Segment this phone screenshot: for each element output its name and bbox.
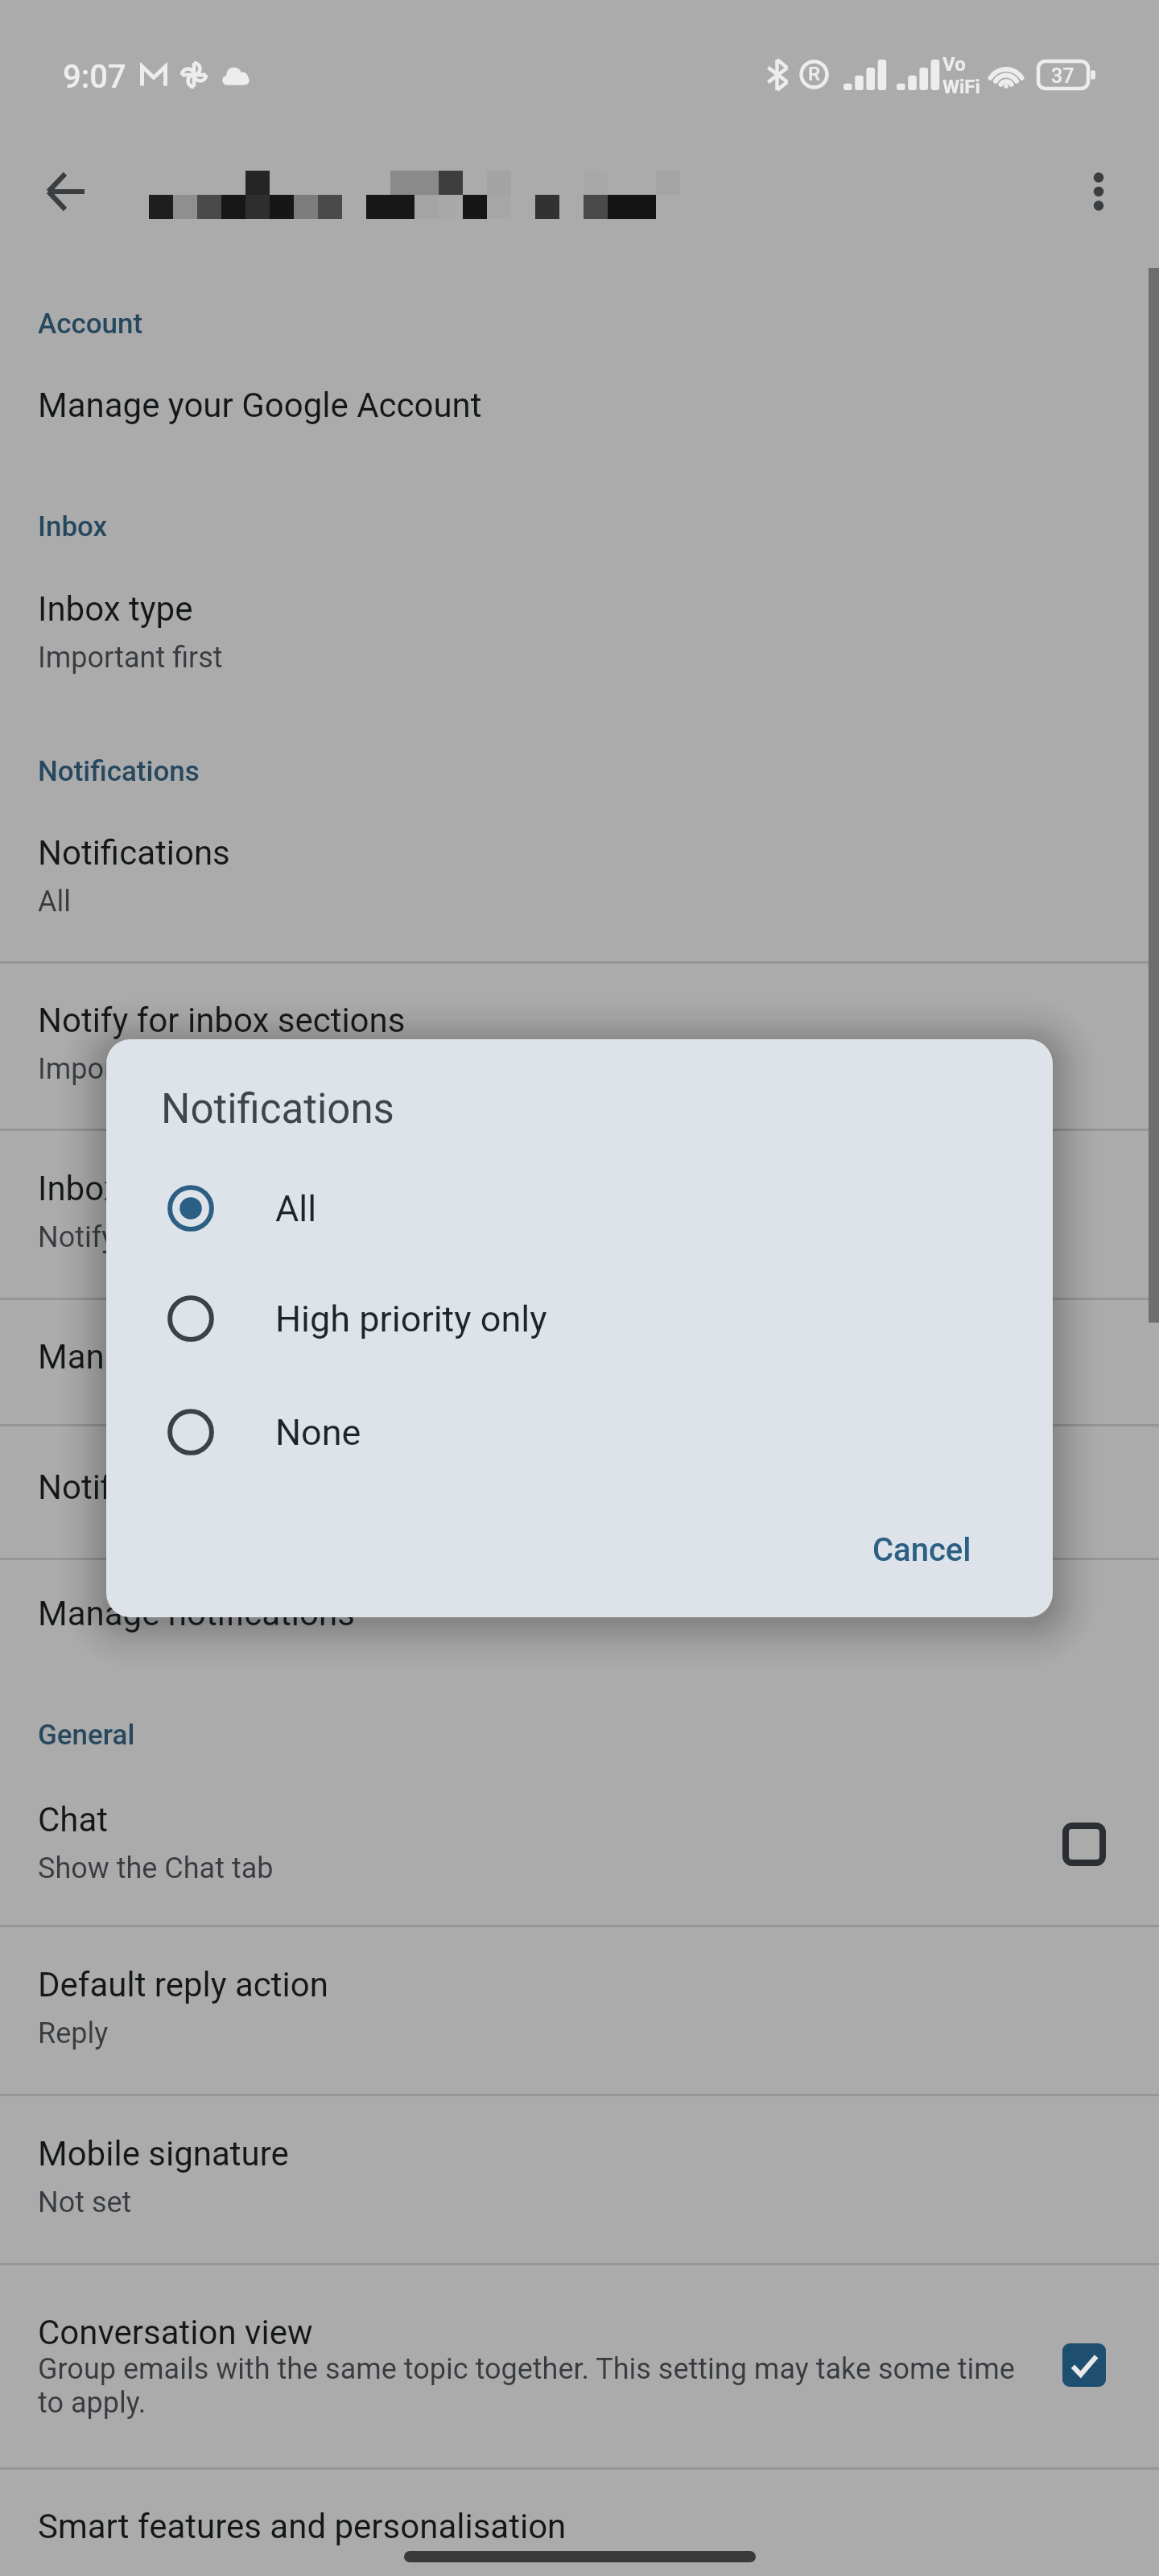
staticText: Conversation view: [38, 2313, 313, 2352]
staticText: Show the Chat tab: [38, 1851, 274, 1885]
button[interactable]: High priority only: [106, 1270, 1053, 1367]
staticText: Notify for every message: [38, 1220, 360, 1254]
button[interactable]: None: [106, 1384, 1053, 1480]
staticText: Manage notifications: [38, 1594, 355, 1633]
button[interactable]: Manage your Google Account: [0, 346, 1159, 473]
staticText: All: [38, 885, 71, 919]
button[interactable]: Smart features and personalisation: [0, 2467, 1159, 2576]
staticText: High priority only: [275, 1298, 547, 1340]
staticText: Important first: [38, 641, 223, 675]
staticText: Inbox type: [38, 589, 193, 629]
button[interactable]: Notify for inbox sections: [0, 961, 1159, 1129]
staticText: None: [275, 1411, 361, 1454]
staticText: General: [38, 1719, 135, 1752]
staticText: Default reply action: [38, 1965, 328, 2004]
staticText: Important and Other: [38, 1052, 299, 1086]
staticText: Smart features and personalisation: [38, 2507, 567, 2546]
staticText: Notifications: [38, 833, 230, 873]
staticText: Notify for inbox sections: [38, 1001, 406, 1040]
staticText: 37: [1051, 64, 1074, 88]
staticText: Reply: [38, 2017, 109, 2050]
staticText: Chat: [38, 1800, 109, 1839]
button[interactable]: Navigate up: [19, 145, 112, 238]
staticText: Notifications: [38, 1468, 230, 1507]
staticText: Cancel: [872, 1531, 971, 1569]
staticText: Account: [38, 308, 143, 341]
button[interactable]: Manage labels: [0, 1298, 1159, 1424]
button[interactable]: Conversation view: [0, 2263, 1159, 2467]
staticText: R: [808, 63, 821, 85]
staticText: Inbox: [38, 510, 108, 543]
staticText: Inbox notifications: [38, 1169, 316, 1208]
button[interactable]: Inbox notifications: [0, 1129, 1159, 1298]
staticText: Vo: [942, 53, 966, 76]
staticText: Not set: [38, 2186, 132, 2219]
staticText: All: [275, 1187, 317, 1230]
button[interactable]: Manage notifications: [0, 1554, 1159, 1681]
button[interactable]: Cancel: [840, 1512, 1004, 1588]
button[interactable]: Default reply action: [0, 1925, 1159, 2094]
staticText: Notifications: [38, 755, 200, 788]
staticText: WiFi: [942, 76, 980, 98]
staticText: Notifications: [161, 1085, 394, 1133]
staticText: 9:07: [63, 58, 126, 96]
button[interactable]: Inbox type: [0, 549, 1159, 718]
button[interactable]: Mobile signature: [0, 2094, 1159, 2263]
button[interactable]: Chat: [0, 1761, 1159, 1928]
button[interactable]: Notifications: [0, 794, 1159, 961]
button[interactable]: All: [106, 1160, 1053, 1257]
button[interactable]: Notifications: [0, 1424, 1159, 1558]
staticText: Group emails with the same topic togethe…: [38, 2352, 1015, 2386]
staticText: Mobile signature: [38, 2134, 289, 2173]
staticText: to apply.: [38, 2386, 146, 2420]
staticText: Manage your Google Account: [38, 386, 482, 425]
button[interactable]: More options: [1052, 145, 1145, 238]
staticText: Manage labels: [38, 1337, 258, 1377]
